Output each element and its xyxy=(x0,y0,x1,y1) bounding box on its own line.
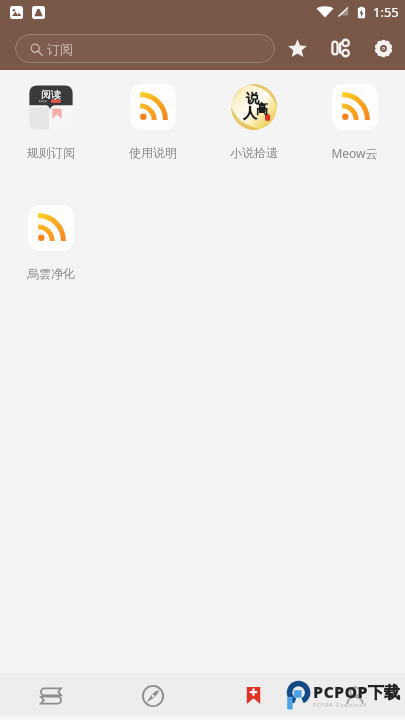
staticText: 1:55 xyxy=(373,3,399,21)
button[interactable]: Library xyxy=(0,674,102,717)
staticText: 人 xyxy=(243,105,257,123)
staticText: 高 xyxy=(256,101,268,116)
button[interactable]: Settings xyxy=(362,26,405,70)
staticText: PCPOP Download xyxy=(313,702,367,708)
button[interactable]: 订阅 xyxy=(15,34,275,63)
staticText: PCPOP下载 xyxy=(313,681,401,703)
button[interactable]: Explore xyxy=(102,674,203,717)
button[interactable]: 烏雲净化 xyxy=(0,205,102,281)
staticText: 烏雲净化 xyxy=(27,266,75,281)
button[interactable]: 说 xyxy=(203,84,304,160)
staticText: 说 xyxy=(246,90,259,106)
staticText: Meow云 xyxy=(331,145,378,161)
staticText: 规则订阅 xyxy=(27,145,75,160)
staticText: 订阅 xyxy=(47,41,73,57)
button[interactable]: Favorites xyxy=(275,26,319,70)
button[interactable]: Meow云 xyxy=(304,84,405,161)
staticText: 小说拾遗 xyxy=(230,145,278,160)
staticText: 使用说明 xyxy=(129,145,177,160)
button[interactable]: 阅读 xyxy=(0,84,102,160)
button[interactable]: Profile xyxy=(304,674,405,717)
staticText: 阅读 xyxy=(41,88,61,101)
button[interactable]: Groups xyxy=(319,26,362,70)
button[interactable]: 使用说明 xyxy=(102,84,203,160)
button[interactable]: Bookmarks xyxy=(203,674,304,717)
